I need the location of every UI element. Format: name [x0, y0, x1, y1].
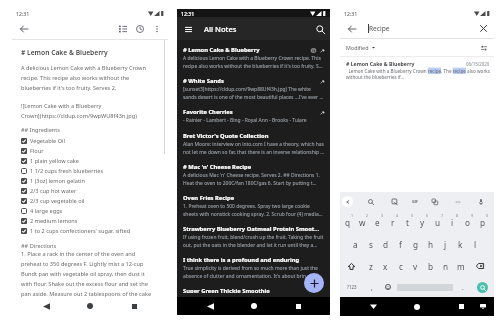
staticText: y — [420, 217, 425, 228]
button[interactable]: Translate — [429, 196, 441, 208]
button[interactable]: r — [385, 211, 400, 233]
button[interactable]: Menu — [181, 22, 195, 36]
staticText: If using frozen fruit, blend/crush up th… — [183, 234, 325, 248]
button[interactable]: Hide keyboard — [472, 297, 494, 316]
button[interactable]: u — [430, 211, 445, 233]
button[interactable]: Vegetable Oil — [21, 136, 157, 146]
button[interactable]: Emoji — [380, 277, 395, 297]
button[interactable]: q — [340, 211, 355, 233]
button[interactable]: Back — [344, 21, 359, 36]
button[interactable]: b — [423, 255, 438, 277]
button[interactable]: x — [378, 255, 393, 277]
button[interactable]: 1 plain yellow cake — [21, 156, 157, 166]
button[interactable]: d — [378, 233, 393, 255]
button[interactable]: c — [393, 255, 408, 277]
button[interactable]: Space — [395, 277, 454, 297]
button[interactable]: w — [355, 211, 370, 233]
button[interactable]: History — [132, 21, 147, 36]
button[interactable]: p — [475, 211, 490, 233]
button[interactable]: 1 1/2 cups fresh blueberries — [21, 166, 157, 176]
button[interactable]: More — [452, 196, 464, 208]
button[interactable]: Back — [16, 21, 31, 36]
button[interactable]: Shift — [340, 255, 363, 277]
button[interactable]: f — [393, 233, 408, 255]
button[interactable]: n — [438, 255, 453, 277]
button[interactable]: 4 large eggs — [21, 206, 157, 216]
button[interactable]: Favorite Cherries — [177, 104, 330, 128]
button[interactable]: k — [453, 233, 468, 255]
staticText: 2 medium lemons — [30, 217, 78, 225]
button[interactable]: Checklist — [115, 21, 130, 36]
button[interactable]: Back — [188, 297, 232, 315]
staticText: 6 — [426, 213, 429, 218]
button[interactable]: Strawberry Blueberry Oatmeal Protein Smo… — [177, 221, 330, 252]
button[interactable]: Stickers — [389, 196, 401, 208]
button[interactable]: Back — [24, 297, 68, 315]
button[interactable]: Expand toolbar — [342, 196, 353, 207]
button[interactable]: New note — [304, 273, 324, 293]
staticText: 12:31 — [344, 10, 358, 17]
button[interactable]: y — [415, 211, 430, 233]
button[interactable]: ?123 — [340, 277, 363, 297]
button[interactable]: e — [370, 211, 385, 233]
button[interactable]: Search — [313, 22, 327, 36]
button[interactable]: Oven Fries Recipe — [177, 190, 330, 221]
button[interactable]: 2/3 cup hot water — [21, 186, 157, 196]
button[interactable]: Recents — [439, 297, 483, 316]
button[interactable]: Recents — [112, 297, 156, 315]
button[interactable]: s — [363, 233, 378, 255]
button[interactable]: l — [468, 233, 483, 255]
staticText: Alan Moore: interview on into.com I have… — [183, 141, 325, 155]
button[interactable]: o — [460, 211, 475, 233]
button[interactable]: m — [453, 255, 468, 277]
button[interactable]: g — [408, 233, 423, 255]
staticText: All Notes — [204, 24, 237, 34]
button[interactable]: Recents — [276, 297, 320, 315]
button[interactable]: I think there is a profound and enduring — [177, 252, 330, 283]
button[interactable]: Modified — [346, 44, 375, 51]
button[interactable]: t — [400, 211, 415, 233]
staticText: Oven Fries Recipe — [183, 194, 322, 202]
button[interactable]: # Mac 'n' Cheese Recipe — [177, 159, 330, 190]
button[interactable]: 1 to 2 cups confectioners' sugar, sifted — [21, 226, 157, 236]
button[interactable]: Bret Victor's Quote Collection — [177, 128, 330, 159]
staticText: 12:31 — [16, 10, 30, 17]
staticText: , — [371, 283, 373, 292]
staticText: t — [406, 217, 409, 228]
button[interactable]: , — [363, 277, 380, 297]
staticText: - Rainier - Lambert - Bing - Royal Ann -… — [183, 117, 307, 124]
button[interactable]: Sort order — [478, 42, 489, 53]
button[interactable]: GIF — [412, 199, 418, 204]
button[interactable]: More options — [149, 21, 164, 36]
button[interactable]: 1 (3oz) lemon gelatin — [21, 176, 157, 186]
staticText: 3 — [381, 213, 384, 218]
button[interactable]: a — [348, 233, 363, 255]
button[interactable]: # Lemon Cake & Blueberry — [177, 42, 330, 73]
staticText: 1. Place a rack in the center of the ove… — [21, 250, 157, 297]
button[interactable]: Backspace — [468, 255, 491, 277]
button[interactable]: . — [454, 277, 471, 297]
button[interactable]: Voice input — [475, 196, 487, 208]
button[interactable]: Search — [365, 196, 377, 208]
staticText: Flour — [30, 147, 44, 155]
button[interactable]: Home — [395, 297, 439, 316]
button[interactable]: j — [438, 233, 453, 255]
staticText: True simplicity is derived from so much … — [183, 265, 325, 279]
button[interactable]: Back — [351, 297, 395, 316]
button[interactable]: i — [445, 211, 460, 233]
button[interactable]: z — [363, 255, 378, 277]
staticText: # Mac 'n' Cheese Recipe — [183, 163, 322, 171]
button[interactable]: Clear — [477, 22, 490, 35]
button[interactable]: # Lemon Cake & Blueberry — [340, 57, 494, 81]
button[interactable]: # White Sands — [177, 73, 330, 104]
button[interactable]: Home — [68, 297, 112, 315]
button[interactable]: Super Green Thickie Smoothie — [177, 283, 330, 297]
button[interactable]: 2/3 cup vegetable oil — [21, 196, 157, 206]
button[interactable]: h — [423, 233, 438, 255]
button[interactable]: Search — [471, 277, 494, 297]
button[interactable]: 2 medium lemons — [21, 216, 157, 226]
staticText: e — [375, 217, 380, 228]
button[interactable]: Flour — [21, 146, 157, 156]
button[interactable]: v — [408, 255, 423, 277]
button[interactable]: Home — [232, 297, 276, 315]
